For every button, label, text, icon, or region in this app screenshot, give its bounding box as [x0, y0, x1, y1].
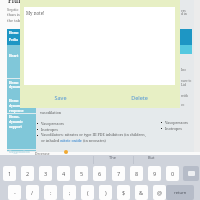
staticText: 0: [171, 170, 175, 177]
button[interactable]: Save: [40, 90, 81, 104]
button[interactable]: /: [26, 185, 39, 200]
button[interactable]: ;: [63, 185, 76, 200]
staticText: 4: [62, 170, 66, 177]
staticText: 2: [26, 170, 30, 177]
staticText: response: [9, 109, 24, 113]
button[interactable]: 3: [39, 166, 52, 181]
staticText: dynamic: [9, 120, 23, 124]
button[interactable]: 4: [57, 166, 70, 181]
staticText: -: [14, 189, 16, 196]
staticText: /: [31, 189, 34, 196]
staticText: Hemo-: [9, 115, 20, 119]
staticText: the tab: [7, 18, 21, 23]
staticText: Vasodilators: nitrates or type III PDE i…: [41, 132, 146, 137]
button[interactable]: (: [81, 185, 94, 200]
staticText: Hemo: [9, 99, 19, 103]
staticText: Oxygenation: [9, 150, 30, 154]
staticText: Heart: [9, 54, 19, 58]
staticText: Ino: [181, 68, 187, 72]
staticText: Vasopressors: [165, 120, 188, 125]
staticText: Septic: [7, 7, 19, 12]
staticText: But: [148, 155, 155, 160]
staticText: Vasopressors: [41, 121, 64, 126]
staticText: 8: [135, 170, 139, 177]
button[interactable]: @: [153, 185, 166, 200]
staticText: Inotropes: [165, 126, 182, 131]
staticText: 6: [98, 170, 102, 177]
staticText: 7: [117, 170, 121, 177]
button[interactable]: Backspace: [183, 166, 199, 181]
staticText: than is: [7, 12, 20, 17]
staticText: dynamic: [9, 85, 23, 89]
button[interactable]: 9: [148, 166, 161, 181]
button[interactable]: Delete: [119, 90, 160, 104]
staticText: vasodilation: [40, 110, 62, 115]
staticText: ers: [181, 9, 186, 13]
staticText: $: [122, 189, 126, 196]
button[interactable]: 1: [3, 166, 16, 181]
staticText: Decrease: [35, 151, 50, 156]
staticText: (: [87, 189, 89, 196]
staticText: Delete: [131, 94, 148, 101]
staticText: with: [181, 94, 188, 98]
button[interactable]: 8: [130, 166, 143, 181]
button[interactable]: $: [117, 185, 130, 200]
button[interactable]: ): [99, 185, 112, 200]
staticText: 9: [153, 170, 157, 177]
button[interactable]: -: [8, 185, 21, 200]
staticText: 1: [8, 170, 12, 177]
button[interactable]: return: [166, 185, 194, 200]
staticText: or inhaled nitric oxide (in neonates): [41, 138, 106, 143]
staticText: Hemo: [9, 81, 19, 85]
button[interactable]: :: [44, 185, 57, 200]
button[interactable]: 7: [112, 166, 125, 181]
staticText: &: [139, 189, 144, 196]
staticText: :: [50, 189, 52, 196]
button[interactable]: 6: [93, 166, 106, 181]
staticText: sure to: [181, 79, 192, 83]
staticText: Fluid-refractory: [8, 0, 59, 4]
staticText: Hemo: [9, 31, 19, 35]
staticText: support: [9, 125, 22, 129]
staticText: 5: [80, 170, 84, 177]
button[interactable]: 5: [75, 166, 88, 181]
staticText: Inotropes: [41, 127, 58, 132]
staticText: ;: [69, 189, 71, 196]
button[interactable]: 2: [21, 166, 34, 181]
staticText: @: [157, 189, 162, 196]
staticText: ): [105, 189, 107, 196]
staticText: My note!: [26, 10, 45, 16]
staticText: The: [109, 155, 116, 160]
staticText: return: [174, 190, 187, 196]
staticText: dynamic: [9, 104, 23, 108]
staticText: 3: [44, 170, 48, 177]
staticText: Lid: [181, 83, 186, 87]
staticText: Save: [54, 94, 67, 101]
staticText: co: [181, 103, 185, 107]
staticText: Pedia: [9, 38, 18, 42]
button[interactable]: 0: [166, 166, 179, 181]
staticText: d in: [181, 12, 187, 16]
button[interactable]: &: [135, 185, 148, 200]
